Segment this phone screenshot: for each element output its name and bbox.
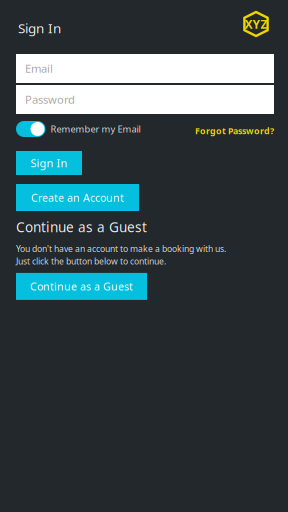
button[interactable]: Create an Account	[16, 184, 139, 211]
button[interactable]: XYZ logo	[243, 11, 269, 37]
staticText: Just click the button below to continue.	[16, 255, 166, 267]
staticText: Sign In	[18, 19, 61, 37]
staticText: You don't have an account to make a book…	[16, 243, 226, 254]
staticText: Continue as a Guest	[16, 218, 147, 236]
button[interactable]: Remember my Email	[16, 121, 140, 137]
staticText: Create an Account	[31, 190, 124, 205]
staticText: Email	[25, 61, 53, 76]
staticText: Continue as a Guest	[30, 279, 133, 293]
button[interactable]: Forgot Password?	[195, 125, 274, 137]
staticText: XYZ	[244, 16, 267, 32]
staticText: Sign In	[30, 156, 67, 170]
staticText: Password	[25, 92, 75, 107]
staticText: Forgot Password?	[195, 125, 274, 137]
button[interactable]: Continue as a Guest	[16, 273, 147, 300]
staticText: Remember my Email	[50, 123, 140, 135]
button[interactable]: Sign In	[16, 151, 82, 175]
button[interactable]: Password	[16, 85, 274, 114]
button[interactable]: Email	[16, 54, 274, 83]
